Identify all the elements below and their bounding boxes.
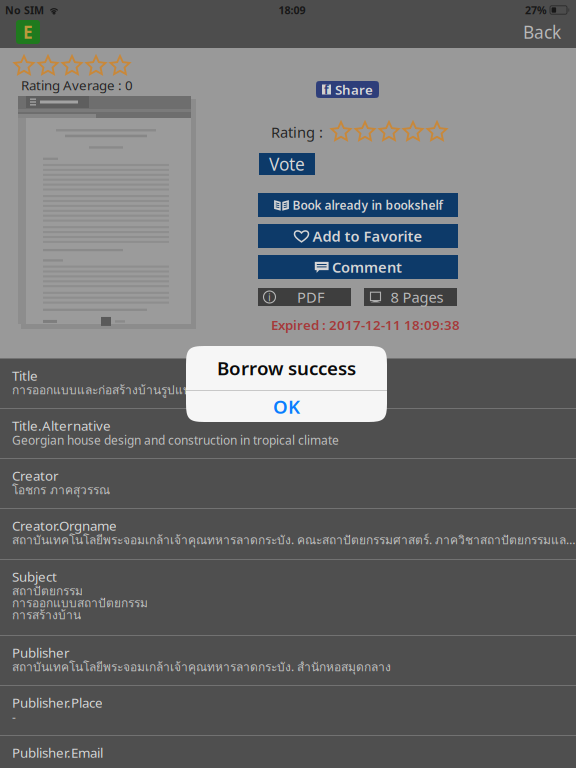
staticText: Share bbox=[335, 81, 373, 98]
staticText: Book already in bookshelf bbox=[292, 197, 442, 213]
staticText: Rating : bbox=[271, 122, 323, 142]
staticText: โอชกร ภาคสุวรรณ bbox=[12, 481, 110, 499]
staticText: Comment bbox=[332, 257, 402, 277]
staticText: Publisher.Email bbox=[12, 744, 103, 761]
staticText: Vote bbox=[269, 152, 305, 175]
button[interactable]: Publisher.Email bbox=[0, 735, 576, 768]
button[interactable]: Vote bbox=[259, 153, 315, 175]
button[interactable]: 8 Pages bbox=[364, 288, 457, 306]
staticText: No SIM bbox=[5, 3, 44, 17]
staticText: 8 Pages bbox=[390, 287, 443, 307]
staticText: การสร้างบ้าน bbox=[12, 606, 81, 624]
staticText: การออกแบบสถาปัตยกรรม bbox=[12, 594, 148, 612]
staticText: E bbox=[23, 20, 33, 43]
staticText: Subject bbox=[12, 568, 57, 585]
staticText: Publisher bbox=[12, 644, 70, 661]
staticText: PDF bbox=[297, 287, 325, 307]
staticText: Publisher.Place bbox=[12, 694, 103, 711]
button[interactable]: Title.Alternative bbox=[0, 408, 576, 458]
button[interactable]: Add to Favorite bbox=[258, 224, 458, 248]
staticText: สถาบันเทคโนโลยีพระจอมเกล้าเจ้าคุณทหารลาด… bbox=[12, 658, 391, 676]
staticText: Georgian house design and construction i… bbox=[12, 432, 339, 448]
staticText: Title bbox=[12, 367, 38, 384]
button[interactable]: Subject bbox=[0, 559, 576, 635]
staticText: Back bbox=[523, 20, 561, 43]
button[interactable]: Creator bbox=[0, 458, 576, 508]
staticText: i bbox=[268, 290, 271, 304]
button[interactable]: Title bbox=[0, 358, 576, 408]
button[interactable]: f bbox=[316, 81, 379, 98]
staticText: Title.Alternative bbox=[12, 417, 111, 434]
button[interactable]: i bbox=[258, 288, 351, 306]
button[interactable]: Back bbox=[523, 18, 561, 46]
staticText: สถาปัตยกรรม bbox=[12, 582, 83, 600]
staticText: OK bbox=[273, 394, 300, 419]
staticText: Expired : 2017-12-11 18:09:38 bbox=[271, 316, 460, 334]
staticText: Borrow success bbox=[217, 356, 356, 380]
button[interactable]: OK bbox=[186, 391, 387, 422]
staticText: Creator bbox=[12, 467, 59, 484]
button[interactable]: Library home bbox=[14, 20, 42, 44]
staticText: Rating Average : 0 bbox=[21, 76, 133, 94]
button[interactable]: Publisher.Place bbox=[0, 685, 576, 735]
button[interactable]: Publisher bbox=[0, 635, 576, 685]
staticText: Creator.Orgname bbox=[12, 517, 117, 534]
button[interactable]: Creator.Orgname bbox=[0, 508, 576, 559]
staticText: - bbox=[12, 709, 16, 725]
staticText: การออกแบบและก่อสร้างบ้านรูปแบบจอร์เจียนใ… bbox=[12, 381, 352, 399]
staticText: 18:09 bbox=[278, 3, 305, 17]
staticText: สถาบันเทคโนโลยีพระจอมเกล้าเจ้าคุณทหารลาด… bbox=[12, 531, 576, 549]
staticText: 27% bbox=[525, 3, 547, 17]
staticText: f bbox=[324, 81, 329, 97]
button[interactable]: Comment bbox=[258, 255, 458, 279]
staticText: Add to Favorite bbox=[312, 226, 422, 246]
button[interactable]: Book already in bookshelf bbox=[258, 193, 458, 217]
